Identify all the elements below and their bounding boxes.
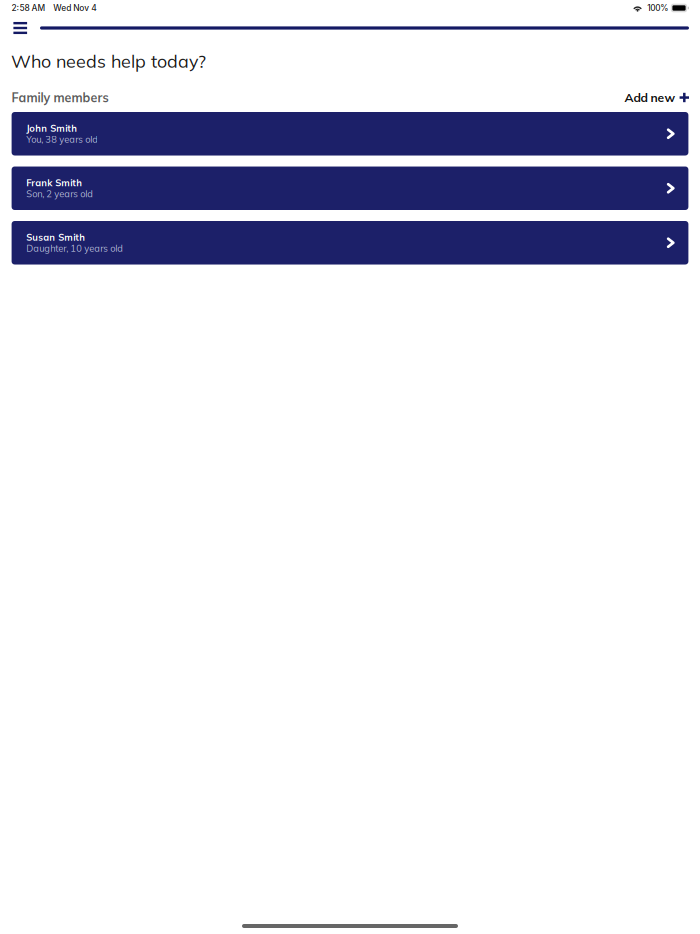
- button[interactable]: Susan Smith: [12, 221, 688, 264]
- staticText: Susan Smith: [26, 231, 85, 243]
- staticText: 2:58 AM: [11, 3, 45, 13]
- staticText: 100%: [647, 3, 668, 13]
- staticText: Add new: [625, 90, 676, 105]
- staticText: Wed Nov 4: [53, 3, 97, 13]
- button[interactable]: Frank Smith: [12, 166, 688, 210]
- button[interactable]: Add new: [625, 90, 689, 105]
- button[interactable]: John Smith: [12, 112, 688, 155]
- staticText: John Smith: [26, 122, 77, 134]
- button[interactable]: Menu: [0, 17, 40, 39]
- staticText: Daughter, 10 years old: [26, 242, 123, 254]
- staticText: You, 38 years old: [26, 133, 98, 145]
- staticText: Who needs help today?: [11, 50, 206, 72]
- staticText: Frank Smith: [26, 177, 82, 189]
- staticText: Family members: [12, 90, 109, 105]
- staticText: Son, 2 years old: [26, 188, 93, 200]
